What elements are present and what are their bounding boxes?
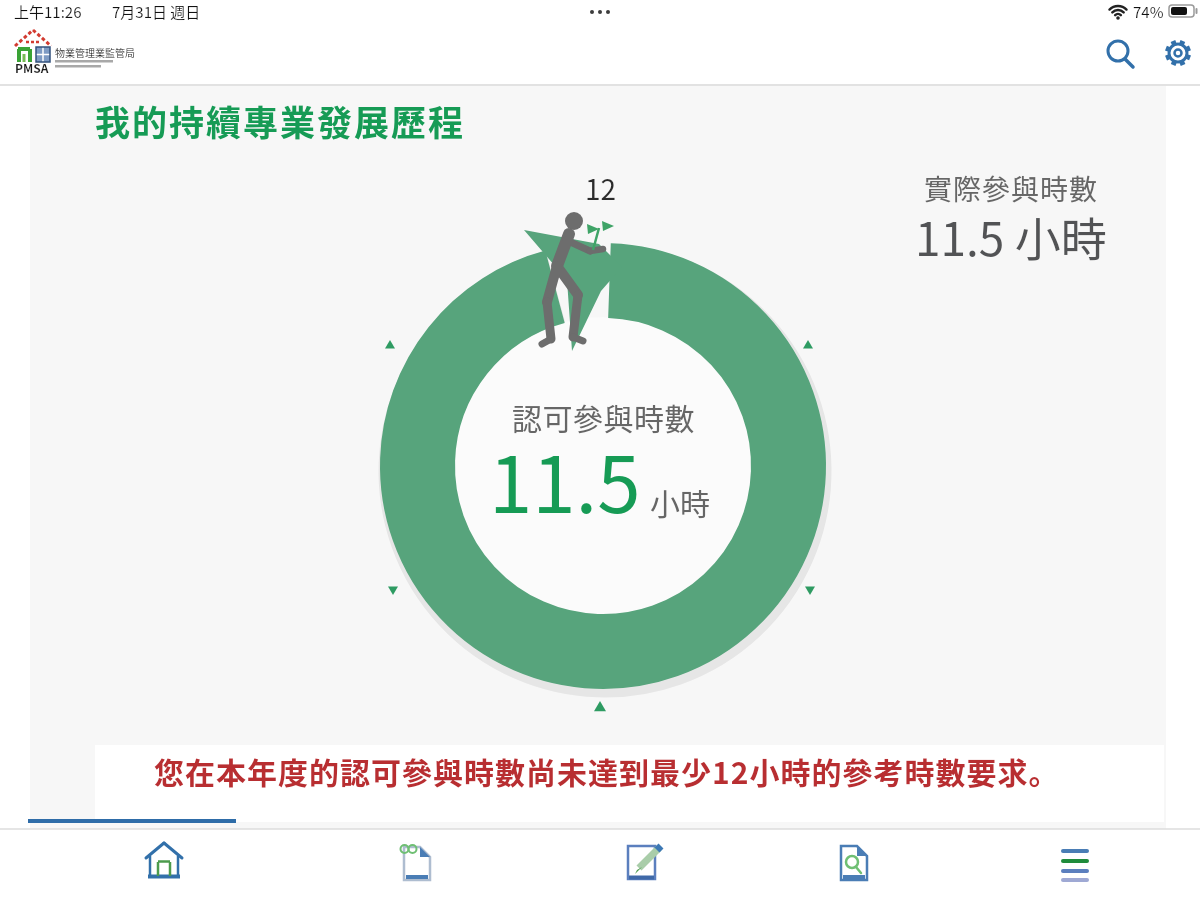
staticText: 我的持續專業發展歷程 bbox=[95, 95, 466, 146]
staticText: 11.5 小時 bbox=[915, 203, 1107, 270]
staticText: PMSA bbox=[15, 59, 49, 76]
button[interactable] bbox=[95, 745, 1164, 822]
button[interactable] bbox=[583, 827, 703, 897]
staticText: 11.5 bbox=[489, 423, 641, 536]
button[interactable] bbox=[104, 827, 224, 897]
button[interactable] bbox=[1156, 32, 1200, 76]
staticText: 物業管理業監管局 bbox=[55, 45, 135, 59]
staticText: 小時 bbox=[650, 480, 710, 523]
button[interactable] bbox=[795, 827, 915, 897]
staticText: 12 bbox=[585, 168, 617, 209]
staticText: 7月31日 週日 bbox=[112, 1, 201, 23]
button[interactable] bbox=[1098, 32, 1142, 76]
staticText: 您在本年度的認可參與時數尚未達到最少12小時的參考時數要求。 bbox=[154, 749, 1060, 792]
staticText: 74% bbox=[1133, 1, 1164, 23]
staticText: 認可參與時數 bbox=[512, 395, 695, 438]
button[interactable] bbox=[358, 827, 478, 897]
staticText: 實際參與時數 bbox=[924, 168, 1099, 209]
staticText: 上午11:26 bbox=[14, 1, 82, 23]
button[interactable] bbox=[1015, 827, 1135, 897]
